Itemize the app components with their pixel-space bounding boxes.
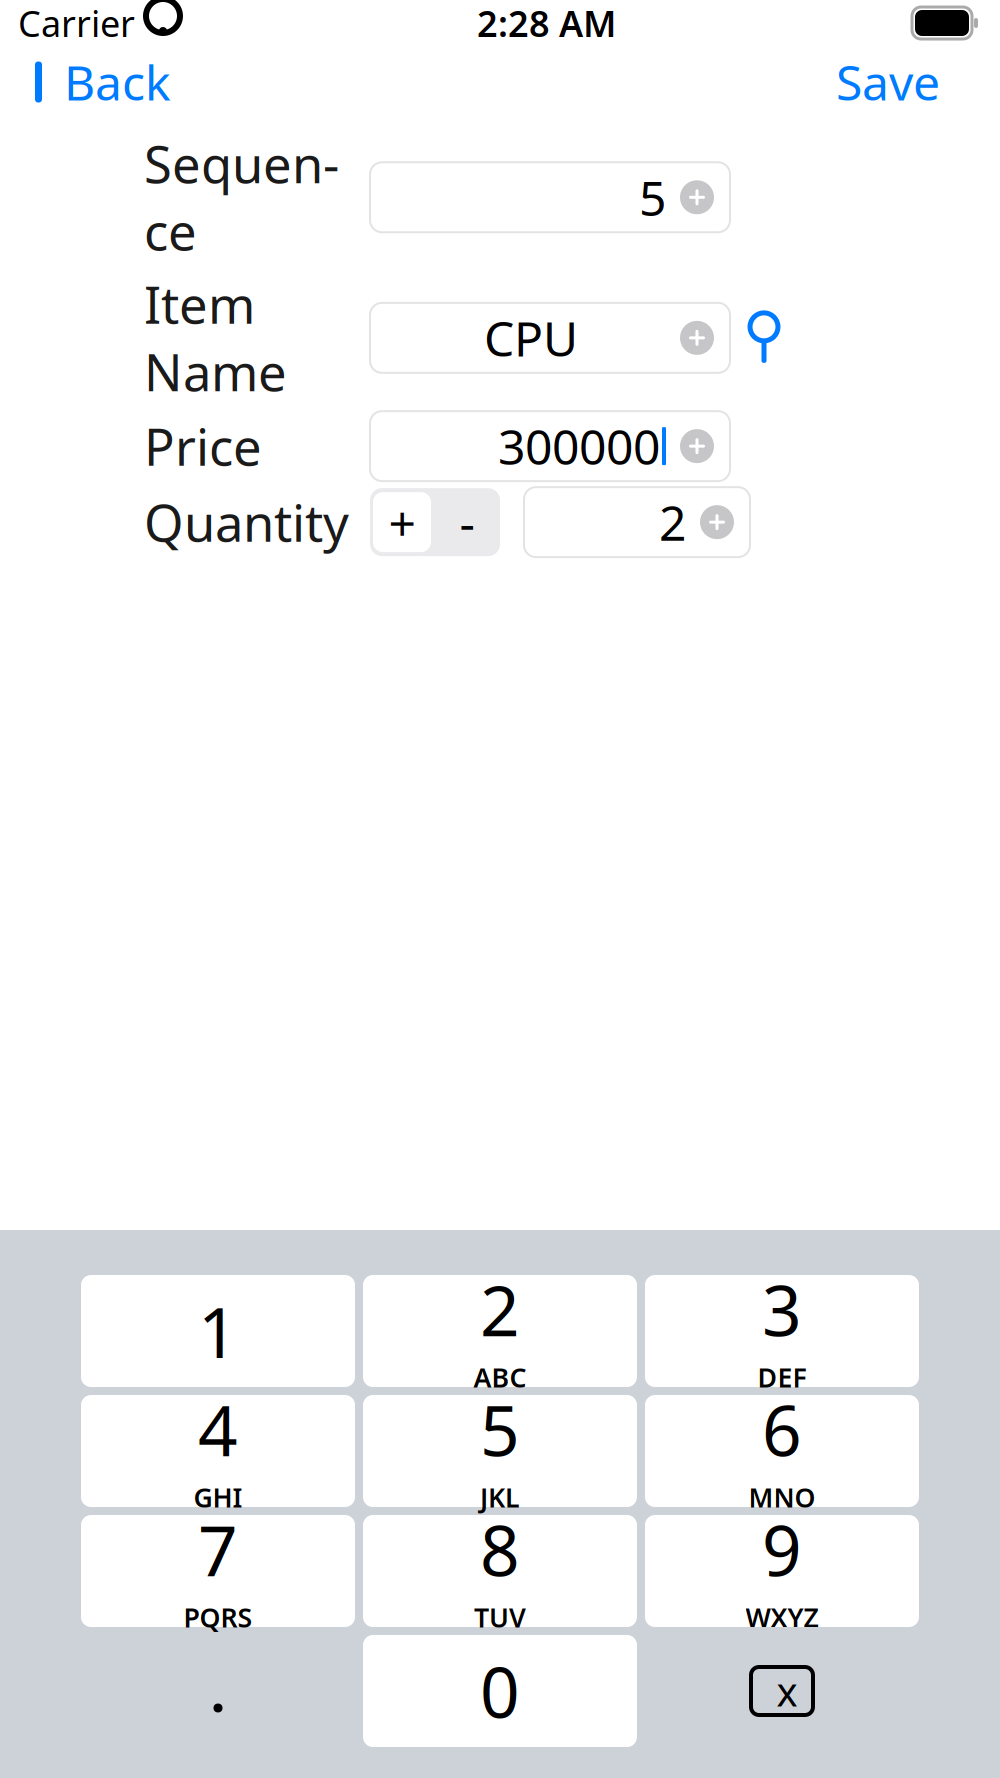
staticText: Quantity bbox=[144, 488, 349, 556]
button[interactable]: Clear text bbox=[694, 499, 740, 545]
button[interactable]: Clear text bbox=[674, 174, 720, 220]
staticText: ABC bbox=[473, 1359, 526, 1395]
button[interactable]: 7 bbox=[81, 1515, 355, 1627]
staticText: Back bbox=[64, 50, 171, 114]
staticText: 2:28 AM bbox=[477, 0, 616, 47]
staticText: 9 bbox=[762, 1503, 802, 1595]
staticText: CPU bbox=[484, 306, 578, 370]
staticText: DEF bbox=[757, 1359, 806, 1395]
button[interactable]: 0 bbox=[363, 1635, 637, 1747]
staticText: 7 bbox=[198, 1503, 238, 1595]
staticText: WXYZ bbox=[745, 1599, 818, 1635]
staticText: 1 bbox=[198, 1285, 238, 1377]
staticText: Price bbox=[144, 412, 262, 480]
button[interactable]: Decrease quantity bbox=[434, 488, 500, 556]
staticText: GHI bbox=[193, 1479, 242, 1515]
staticText: MNO bbox=[748, 1479, 815, 1515]
staticText: - bbox=[459, 490, 474, 554]
button[interactable]: Back bbox=[0, 51, 187, 113]
button[interactable]: 2 bbox=[363, 1275, 637, 1387]
button[interactable]: 6 bbox=[645, 1395, 919, 1507]
staticText: Sequence bbox=[144, 130, 339, 265]
staticText: + bbox=[388, 490, 415, 554]
staticText: 2 bbox=[659, 490, 686, 554]
staticText: Save bbox=[836, 50, 940, 114]
staticText: PQRS bbox=[183, 1599, 252, 1635]
button[interactable]: 3 bbox=[645, 1275, 919, 1387]
staticText: 6 bbox=[762, 1383, 802, 1475]
staticText: JKL bbox=[480, 1479, 520, 1515]
staticText: 2 bbox=[480, 1263, 520, 1355]
button[interactable]: 4 bbox=[81, 1395, 355, 1507]
button[interactable]: Clear text bbox=[674, 423, 720, 469]
button[interactable]: Save bbox=[812, 51, 964, 113]
button[interactable]: 1 bbox=[81, 1275, 355, 1387]
staticText: 0 bbox=[480, 1645, 520, 1737]
staticText: x bbox=[776, 1664, 797, 1717]
button[interactable]: Decimal point bbox=[81, 1635, 355, 1747]
button[interactable]: 9 bbox=[645, 1515, 919, 1627]
button[interactable]: 8 bbox=[363, 1515, 637, 1627]
staticText: 5 bbox=[480, 1383, 520, 1475]
staticText: 3 bbox=[762, 1263, 802, 1355]
button[interactable]: Clear text bbox=[674, 315, 720, 361]
staticText: 4 bbox=[198, 1383, 238, 1475]
button[interactable]: Location bbox=[742, 310, 786, 366]
button[interactable]: Delete bbox=[645, 1635, 919, 1747]
staticText: TUV bbox=[474, 1599, 526, 1635]
staticText: 8 bbox=[480, 1503, 520, 1595]
staticText: Carrier bbox=[18, 0, 135, 47]
staticText: 5 bbox=[639, 165, 666, 229]
button[interactable]: 5 bbox=[363, 1395, 637, 1507]
staticText: Item Name bbox=[144, 271, 287, 405]
staticText: 300000 bbox=[498, 414, 660, 478]
button[interactable]: Increase quantity bbox=[370, 488, 434, 556]
